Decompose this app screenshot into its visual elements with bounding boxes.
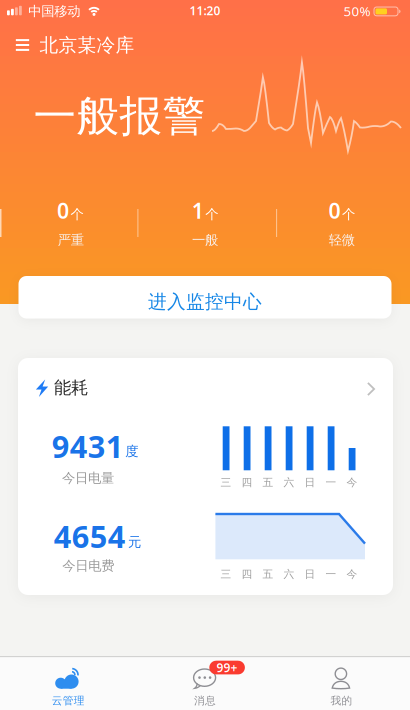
- staticText: 五: [262, 476, 273, 489]
- staticText: 六: [283, 476, 294, 489]
- button[interactable]: 菜单: [11, 34, 33, 56]
- staticText: 1: [192, 196, 204, 225]
- staticText: 个: [70, 206, 83, 222]
- button[interactable]: 消息: [137, 660, 273, 710]
- staticText: 中国移动: [28, 3, 80, 19]
- staticText: 能耗: [54, 377, 88, 398]
- staticText: 四: [241, 568, 252, 581]
- staticText: 0: [328, 196, 340, 225]
- staticText: 一: [325, 568, 336, 581]
- staticText: 三: [220, 476, 231, 489]
- staticText: 一般: [192, 232, 218, 248]
- staticText: 一般报警: [34, 90, 206, 142]
- staticText: 云管理: [52, 694, 85, 707]
- staticText: 进入监控中心: [148, 290, 262, 313]
- staticText: 北京某冷库: [39, 34, 134, 57]
- button[interactable]: 我的: [273, 660, 410, 710]
- staticText: 个: [205, 206, 218, 222]
- staticText: 日: [304, 568, 315, 581]
- staticText: 我的: [331, 694, 353, 707]
- staticText: 五: [262, 568, 273, 581]
- staticText: 度: [125, 443, 138, 459]
- staticText: 11:20: [189, 3, 220, 18]
- staticText: 4654: [54, 516, 126, 556]
- staticText: 六: [283, 568, 294, 581]
- staticText: 今: [346, 476, 357, 489]
- staticText: 今日电费: [62, 558, 114, 574]
- staticText: 今日电量: [62, 470, 114, 486]
- staticText: 一: [325, 476, 336, 489]
- staticText: 个: [342, 206, 355, 222]
- staticText: 元: [128, 534, 141, 550]
- button[interactable]: 云管理: [0, 660, 137, 710]
- staticText: 严重: [58, 232, 84, 248]
- staticText: 0: [57, 196, 69, 225]
- staticText: 三: [220, 568, 231, 581]
- staticText: 9431: [52, 426, 124, 466]
- staticText: 轻微: [329, 232, 355, 248]
- staticText: 99+: [217, 660, 238, 675]
- staticText: 日: [304, 476, 315, 489]
- staticText: 消息: [194, 694, 216, 707]
- staticText: 今: [346, 568, 357, 581]
- button[interactable]: 进入监控中心: [18, 276, 391, 318]
- staticText: 四: [241, 476, 252, 489]
- staticText: 50%: [343, 2, 370, 20]
- button[interactable]: 能耗: [18, 358, 393, 595]
